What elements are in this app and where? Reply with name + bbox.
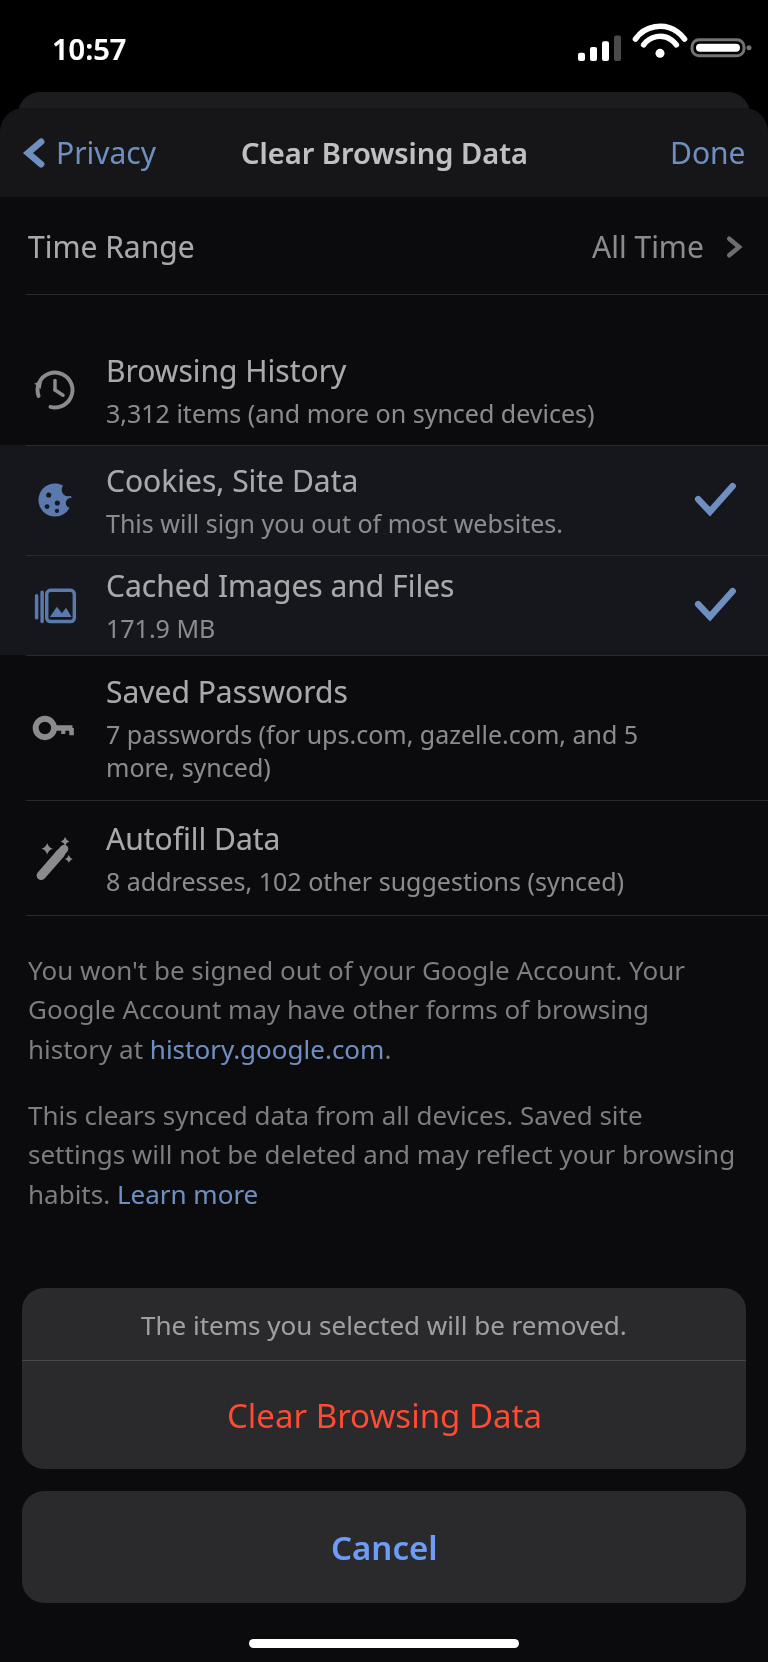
staticText: Browsing History bbox=[106, 350, 347, 391]
staticText: Clear Browsing Data bbox=[227, 1393, 542, 1438]
staticText: Saved Passwords bbox=[106, 671, 348, 712]
staticText: Privacy bbox=[56, 132, 157, 173]
staticText: Time Range bbox=[28, 226, 195, 267]
staticText: 3,312 items (and more on synced devices) bbox=[106, 396, 595, 430]
button[interactable]: Privacy bbox=[18, 124, 163, 181]
staticText: 7 passwords (for ups.com, gazelle.com, a… bbox=[106, 717, 676, 784]
staticText: This clears synced data from all devices… bbox=[28, 1097, 740, 1212]
button[interactable]: Cancel bbox=[22, 1491, 746, 1603]
staticText: This will sign you out of most websites. bbox=[106, 506, 564, 540]
staticText: You won't be signed out of your Google A… bbox=[28, 952, 740, 1067]
staticText: Cookies, Site Data bbox=[106, 460, 359, 501]
staticText: The items you selected will be removed. bbox=[141, 1307, 627, 1342]
button[interactable]: Done bbox=[648, 118, 768, 187]
staticText: Cached Images and Files bbox=[106, 565, 455, 606]
staticText: 10:57 bbox=[52, 29, 127, 68]
button[interactable]: Time Range bbox=[0, 197, 768, 295]
staticText: Cancel bbox=[331, 1525, 438, 1570]
staticText: 171.9 MB bbox=[106, 611, 216, 645]
staticText: Autofill Data bbox=[106, 818, 281, 859]
staticText: Clear Browsing Data bbox=[241, 133, 528, 172]
staticText: All Time bbox=[592, 226, 704, 267]
button[interactable]: Cookies, Site Data bbox=[0, 445, 768, 555]
button[interactable]: Saved Passwords bbox=[0, 655, 768, 800]
button[interactable]: Browsing History bbox=[0, 335, 768, 445]
button[interactable]: Autofill Data bbox=[0, 800, 768, 915]
staticText: 8 addresses, 102 other suggestions (sync… bbox=[106, 864, 625, 898]
button[interactable]: Clear Browsing Data bbox=[22, 1361, 746, 1469]
button[interactable]: Cached Images and Files bbox=[0, 555, 768, 655]
